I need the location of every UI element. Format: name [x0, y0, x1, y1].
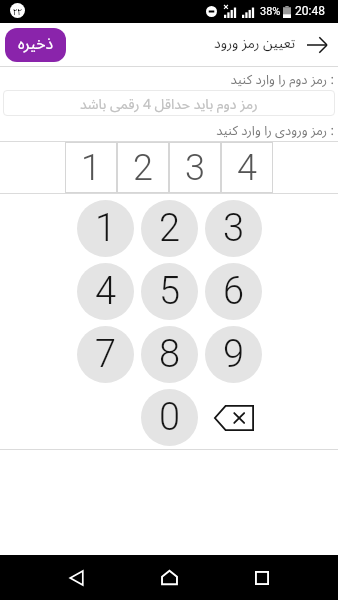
staticText: رمز ورودی را وارد کنید :: [0, 121, 334, 139]
staticText: 0: [159, 395, 181, 440]
staticText: 9: [223, 332, 245, 377]
button[interactable]: 9: [205, 326, 262, 383]
button[interactable]: 2: [117, 142, 169, 193]
staticText: 2: [133, 147, 153, 189]
button[interactable]: 6: [205, 263, 262, 320]
button[interactable]: Backspace: [205, 389, 262, 446]
staticText: رمز دوم را وارد کنید :: [0, 70, 334, 88]
staticText: 4: [237, 147, 257, 189]
button[interactable]: 7: [77, 326, 134, 383]
staticText: 1: [81, 147, 101, 189]
button[interactable]: Home: [146, 555, 192, 600]
staticText: 38%: [260, 5, 281, 18]
button[interactable]: 3: [169, 142, 221, 193]
button[interactable]: Back: [53, 555, 99, 600]
button[interactable]: 0: [141, 389, 198, 446]
staticText: ۲۲: [13, 5, 22, 17]
button[interactable]: 1: [65, 142, 117, 193]
button[interactable]: رمز دوم باید حداقل 4 رقمی باشد: [3, 90, 335, 116]
staticText: 3: [185, 147, 205, 189]
button[interactable]: 4: [221, 142, 273, 193]
button[interactable]: 2: [141, 200, 198, 257]
button[interactable]: 5: [141, 263, 198, 320]
staticText: 8: [159, 332, 181, 377]
button[interactable]: 1: [77, 200, 134, 257]
button[interactable]: 8: [141, 326, 198, 383]
button[interactable]: 4: [77, 263, 134, 320]
staticText: 4: [95, 269, 117, 314]
button[interactable]: Recents: [239, 555, 285, 600]
staticText: 7: [95, 332, 117, 377]
staticText: 6: [223, 269, 245, 314]
staticText: رمز دوم باید حداقل 4 رقمی باشد: [80, 94, 258, 113]
staticText: ذخیره: [18, 32, 54, 54]
staticText: تعیین رمز ورود: [214, 33, 296, 52]
staticText: 3: [223, 206, 245, 251]
staticText: 1: [95, 206, 117, 251]
button[interactable]: ذخیره: [5, 28, 66, 62]
staticText: 5: [159, 269, 181, 314]
button[interactable]: 3: [205, 200, 262, 257]
staticText: 20:48: [295, 4, 325, 18]
button[interactable]: Back: [304, 32, 330, 58]
staticText: 2: [159, 206, 181, 251]
